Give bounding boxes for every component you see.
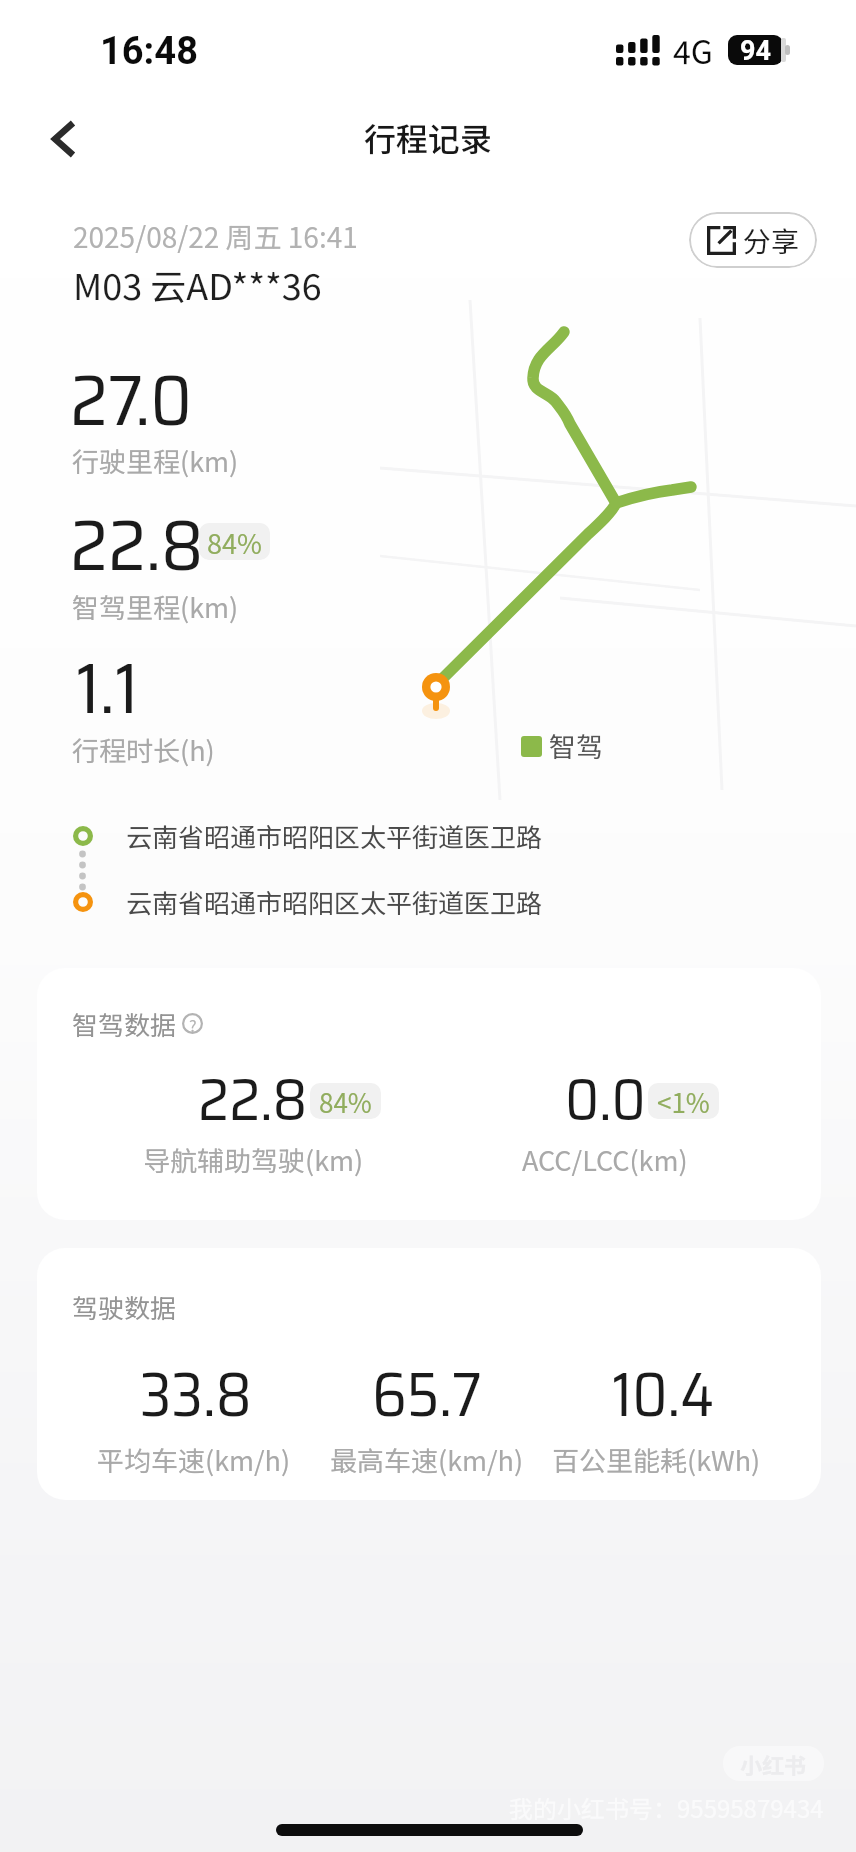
button[interactable]: 分享 bbox=[689, 212, 817, 268]
staticText: 4G bbox=[673, 27, 713, 73]
button[interactable]: Back bbox=[30, 105, 98, 173]
staticText: 行程时长(h) bbox=[72, 730, 215, 769]
staticText: 行程记录 bbox=[364, 114, 493, 160]
button[interactable]: 云南省昭通市昭阳区太平街道医卫路 bbox=[60, 876, 620, 928]
button[interactable]: 云南省昭通市昭阳区太平街道医卫路 bbox=[60, 810, 620, 862]
staticText: 行驶里程(km) bbox=[72, 441, 239, 480]
staticText: 0.0 bbox=[565, 1053, 646, 1146]
staticText: 百公里能耗(kWh) bbox=[552, 1440, 761, 1479]
button[interactable]: 驾驶数据 bbox=[37, 1248, 821, 1500]
staticText: 平均车速(km/h) bbox=[97, 1440, 291, 1479]
staticText: 10.4 bbox=[612, 1347, 715, 1443]
staticText: 分享 bbox=[743, 220, 800, 261]
staticText: 65.7 bbox=[372, 1347, 482, 1443]
staticText: 33.8 bbox=[140, 1347, 252, 1443]
staticText: 我的小红书号：95595879434 bbox=[509, 1790, 824, 1825]
staticText: 22.8 bbox=[198, 1053, 308, 1146]
staticText: 1.1 bbox=[76, 631, 139, 744]
staticText: 导航辅助驾驶(km) bbox=[143, 1140, 364, 1179]
staticText: 94 bbox=[740, 35, 771, 65]
staticText: 智驾 bbox=[549, 726, 603, 765]
button[interactable]: About smart driving data bbox=[182, 1013, 203, 1034]
button[interactable]: 智驾数据 bbox=[37, 968, 821, 1220]
staticText: <1% bbox=[657, 1083, 710, 1119]
staticText: 云南省昭通市昭阳区太平街道医卫路 bbox=[126, 817, 543, 855]
staticText: M03 云AD***36 bbox=[73, 258, 322, 310]
staticText: 2025/08/22 周五 16:41 bbox=[73, 216, 358, 257]
staticText: 16:48 bbox=[100, 29, 198, 74]
staticText: 智驾里程(km) bbox=[72, 587, 239, 626]
staticText: ? bbox=[189, 1013, 197, 1034]
staticText: 云南省昭通市昭阳区太平街道医卫路 bbox=[126, 883, 543, 921]
staticText: 驾驶数据 bbox=[72, 1288, 177, 1326]
staticText: 22.8 bbox=[70, 488, 204, 601]
staticText: 小红书 bbox=[740, 1748, 807, 1780]
staticText: 84% bbox=[207, 523, 262, 560]
staticText: 27.0 bbox=[70, 343, 193, 456]
staticText: 智驾数据 bbox=[72, 1005, 177, 1043]
staticText: 最高车速(km/h) bbox=[330, 1440, 524, 1479]
staticText: ACC/LCC(km) bbox=[522, 1140, 688, 1179]
staticText: 84% bbox=[319, 1083, 372, 1119]
